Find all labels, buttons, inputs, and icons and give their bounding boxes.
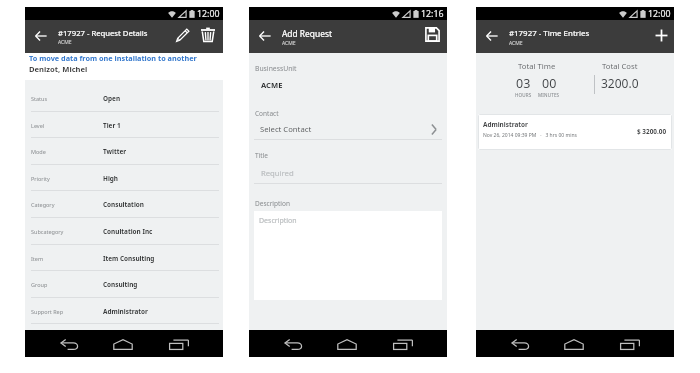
staticText: 00 bbox=[542, 75, 557, 92]
staticText: ACME bbox=[282, 40, 296, 47]
button[interactable]: Item bbox=[25, 245, 223, 271]
button[interactable]: Status bbox=[25, 85, 223, 112]
staticText: 03 bbox=[516, 75, 531, 92]
staticText: Tier 1 bbox=[103, 121, 121, 130]
button[interactable]: Back bbox=[276, 331, 310, 358]
staticText: MINUTES bbox=[538, 92, 560, 98]
staticText: Denizot, Michel bbox=[29, 64, 88, 74]
staticText: Add Request bbox=[282, 28, 332, 39]
button[interactable]: Home bbox=[106, 331, 140, 358]
staticText: ACME bbox=[58, 39, 72, 46]
staticText: #17927 - Time Entries bbox=[509, 28, 590, 39]
button[interactable]: Home bbox=[330, 331, 364, 358]
staticText: To move data from one installation to an… bbox=[29, 53, 197, 63]
staticText: Description bbox=[259, 216, 297, 226]
staticText: Item Consulting bbox=[103, 254, 155, 263]
button[interactable]: Home bbox=[557, 331, 591, 358]
staticText: Contact bbox=[255, 109, 279, 118]
staticText: Consulting bbox=[103, 280, 138, 289]
staticText: Total Time bbox=[518, 61, 556, 71]
button[interactable]: Select Contact bbox=[249, 122, 447, 136]
staticText: Consultation bbox=[103, 200, 144, 209]
staticText: Category bbox=[31, 201, 55, 208]
button[interactable]: Level bbox=[25, 112, 223, 138]
button[interactable]: Save bbox=[419, 20, 447, 53]
button[interactable]: Category bbox=[25, 191, 223, 218]
staticText: 3200.0 bbox=[601, 75, 639, 91]
button[interactable]: Description bbox=[254, 211, 442, 300]
button[interactable]: Back bbox=[52, 331, 86, 358]
staticText: #17927 - Request Details bbox=[58, 28, 148, 38]
staticText: Priority bbox=[31, 175, 50, 182]
staticText: 12:16 bbox=[421, 8, 444, 20]
staticText: Mode bbox=[31, 148, 46, 155]
staticText: 12:00 bbox=[648, 8, 671, 20]
staticText: HOURS bbox=[515, 92, 532, 98]
button[interactable]: Back bbox=[249, 20, 282, 53]
staticText: ACME bbox=[261, 80, 283, 90]
staticText: $ 3200.00 bbox=[637, 127, 667, 136]
button[interactable]: Back bbox=[25, 20, 58, 53]
button[interactable]: Add bbox=[646, 20, 674, 53]
button[interactable]: Priority bbox=[25, 165, 223, 191]
button[interactable]: Mode bbox=[25, 138, 223, 165]
staticText: Level bbox=[31, 122, 45, 129]
staticText: Description bbox=[255, 199, 290, 208]
button[interactable]: Subcategory bbox=[25, 218, 223, 245]
staticText: Twitter bbox=[103, 147, 127, 156]
staticText: Subcategory bbox=[31, 228, 64, 235]
button[interactable]: Back bbox=[476, 20, 509, 53]
staticText: Title bbox=[255, 151, 268, 160]
staticText: Conultation Inc bbox=[103, 227, 153, 236]
staticText: ACME bbox=[509, 40, 523, 47]
button[interactable]: Recent apps bbox=[162, 331, 196, 358]
staticText: Administrator bbox=[483, 120, 528, 129]
staticText: Group bbox=[31, 281, 48, 288]
staticText: High bbox=[103, 174, 118, 183]
button[interactable]: Recent apps bbox=[613, 331, 647, 358]
button[interactable]: Delete bbox=[195, 18, 220, 51]
button[interactable]: Back bbox=[503, 331, 537, 358]
staticText: Nov 26, 2014 09:39 PM · 3 hrs 00 mins bbox=[483, 132, 577, 139]
staticText: Total Cost bbox=[602, 61, 638, 71]
staticText: Select Contact bbox=[260, 124, 312, 134]
staticText: Support Rep bbox=[31, 308, 64, 315]
button[interactable]: Recent apps bbox=[386, 331, 420, 358]
staticText: 12:00 bbox=[197, 8, 220, 20]
button[interactable]: Administrator bbox=[478, 114, 672, 150]
staticText: Status bbox=[31, 95, 48, 102]
button[interactable]: Group bbox=[25, 271, 223, 298]
staticText: Item bbox=[31, 255, 44, 262]
staticText: BusinessUnit bbox=[255, 64, 297, 73]
staticText: Open bbox=[103, 94, 121, 103]
button[interactable]: Edit bbox=[170, 18, 195, 51]
staticText: Required bbox=[261, 168, 294, 178]
staticText: Administrator bbox=[103, 307, 148, 316]
button[interactable]: Support Rep bbox=[25, 298, 223, 324]
